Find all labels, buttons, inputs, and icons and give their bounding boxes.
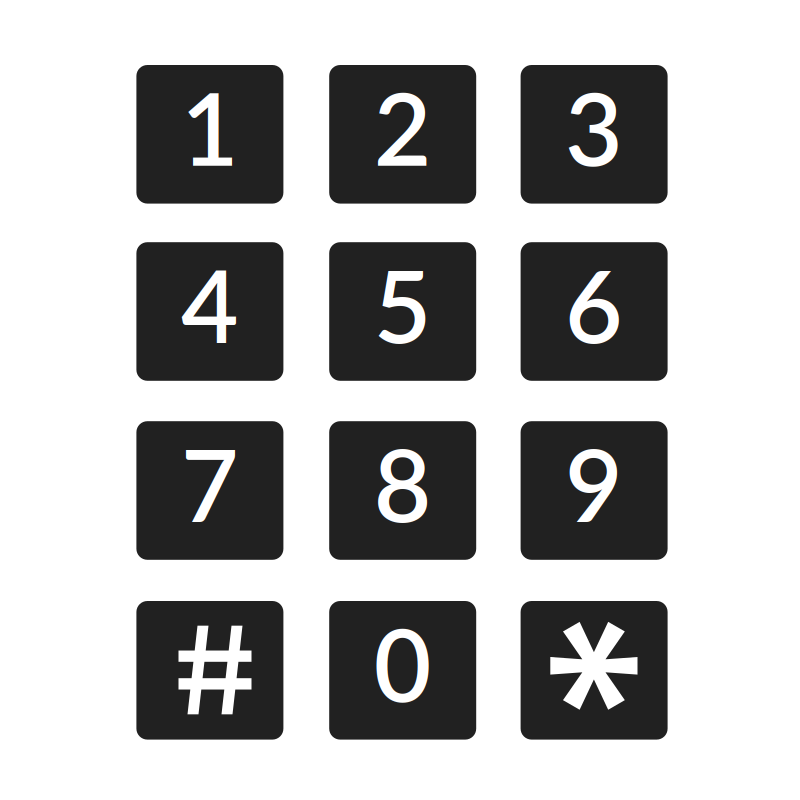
staticText: 5: [374, 245, 432, 364]
staticText: 7: [181, 424, 239, 543]
staticText: 3: [565, 68, 623, 187]
button[interactable]: 3: [521, 65, 668, 204]
button[interactable]: 2: [329, 65, 476, 204]
staticText: 0: [374, 604, 432, 723]
button[interactable]: Pound: [136, 601, 283, 740]
button[interactable]: Star: [521, 601, 668, 740]
staticText: 9: [565, 424, 623, 543]
staticText: 8: [374, 424, 432, 543]
button[interactable]: 9: [521, 421, 668, 560]
staticText: 4: [181, 245, 239, 364]
button[interactable]: 7: [136, 421, 283, 560]
button[interactable]: 4: [136, 242, 283, 381]
staticText: 6: [565, 245, 623, 364]
button[interactable]: 0: [329, 601, 476, 740]
staticText: 1: [181, 68, 239, 187]
button[interactable]: 6: [521, 242, 668, 381]
button[interactable]: 5: [329, 242, 476, 381]
button[interactable]: 1: [136, 65, 283, 204]
button[interactable]: 8: [329, 421, 476, 560]
staticText: 2: [374, 68, 432, 187]
